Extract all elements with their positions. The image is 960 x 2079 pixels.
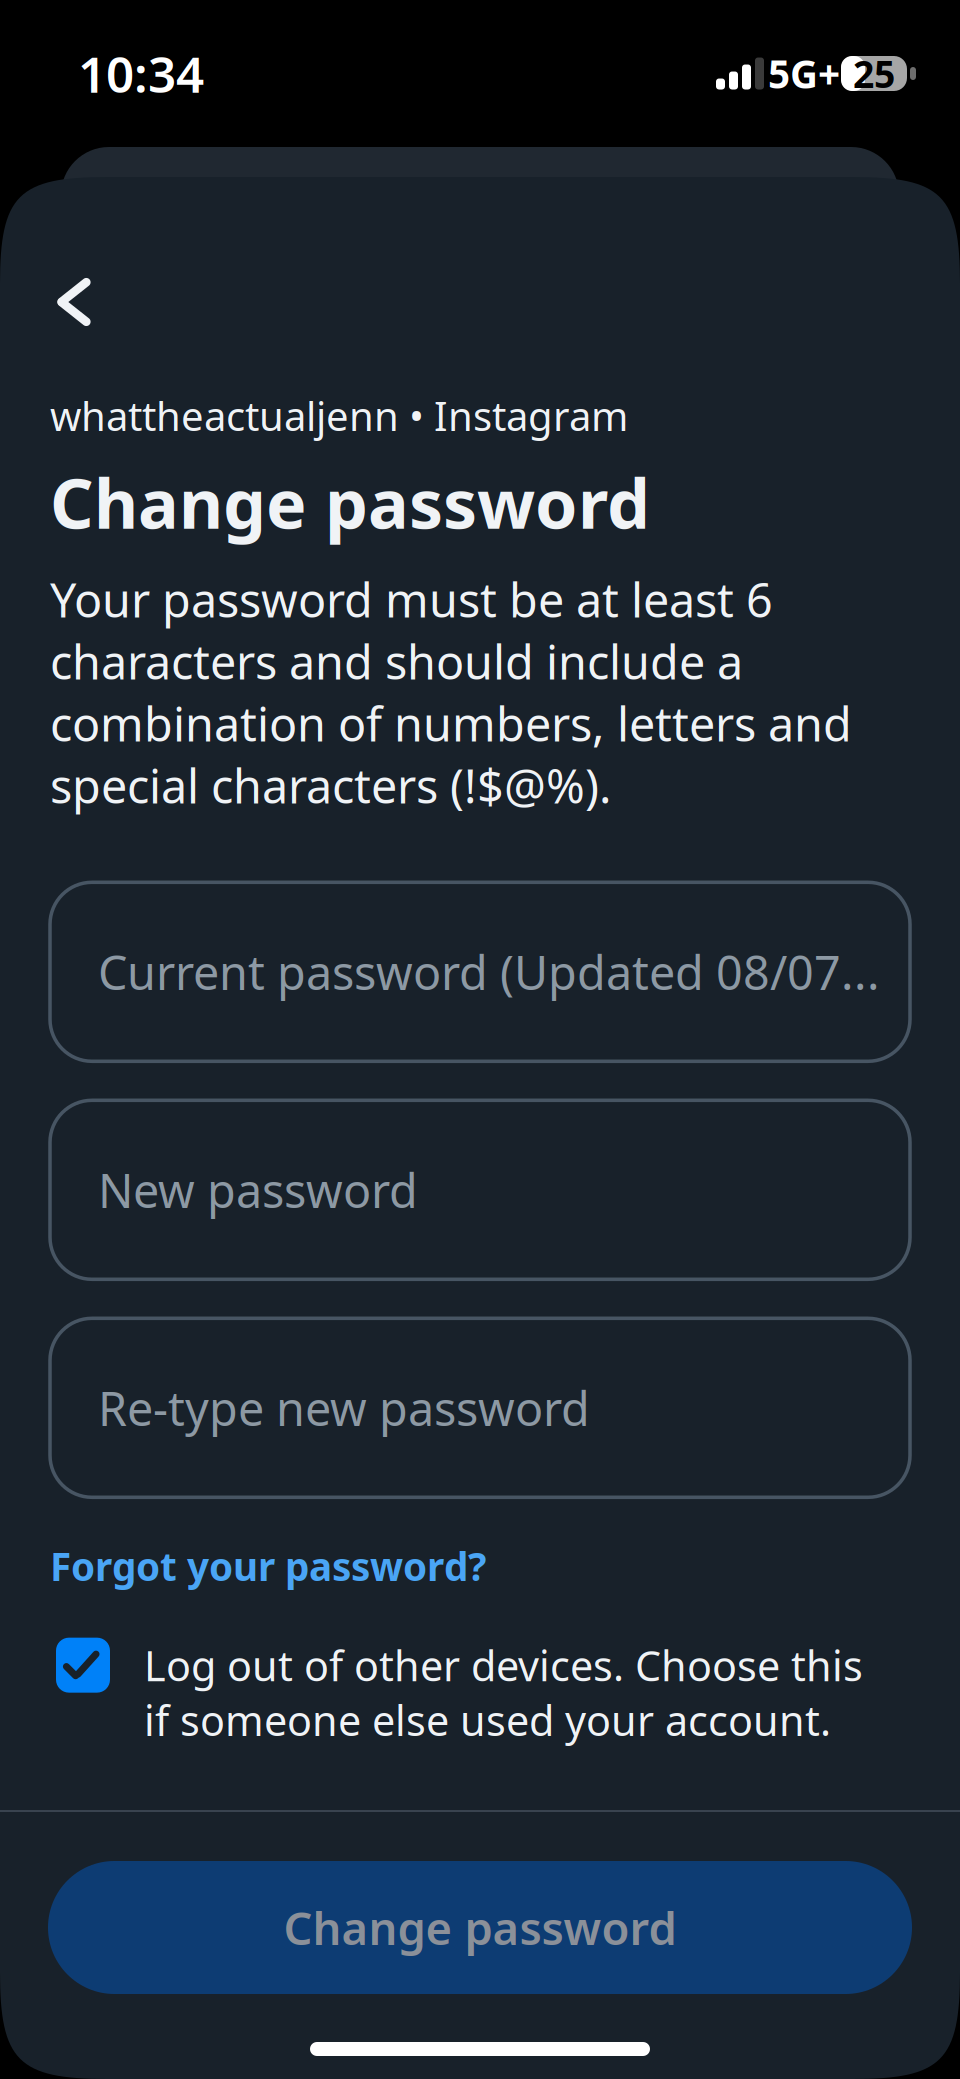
staticText: 10:34	[78, 41, 204, 106]
button[interactable]: Re-type new password	[50, 1318, 910, 1497]
button[interactable]: Back	[0, 254, 120, 350]
button[interactable]: New password	[50, 1100, 910, 1279]
staticText: Change password	[283, 1897, 676, 1958]
staticText: Log out of other devices. Choose this if…	[144, 1638, 863, 1747]
staticText: Re-type new password	[98, 1377, 590, 1439]
button[interactable]: Change password	[48, 1861, 912, 1994]
button[interactable]: Forgot your password?	[50, 1540, 486, 1592]
staticText: Your password must be at least 6 charact…	[50, 568, 852, 816]
button[interactable]: Log out of other devices. Choose this if…	[0, 1638, 960, 1747]
staticText: whattheactualjenn • Instagram	[50, 389, 628, 442]
staticText: 5G+	[768, 48, 840, 99]
staticText: Change password	[50, 457, 650, 547]
staticText: New password	[98, 1159, 418, 1221]
button[interactable]: Current password (Updated 08/07...	[50, 882, 910, 1061]
staticText: 25	[853, 49, 895, 98]
staticText: Current password (Updated 08/07...	[98, 941, 880, 1003]
staticText: Forgot your password?	[50, 1540, 486, 1592]
